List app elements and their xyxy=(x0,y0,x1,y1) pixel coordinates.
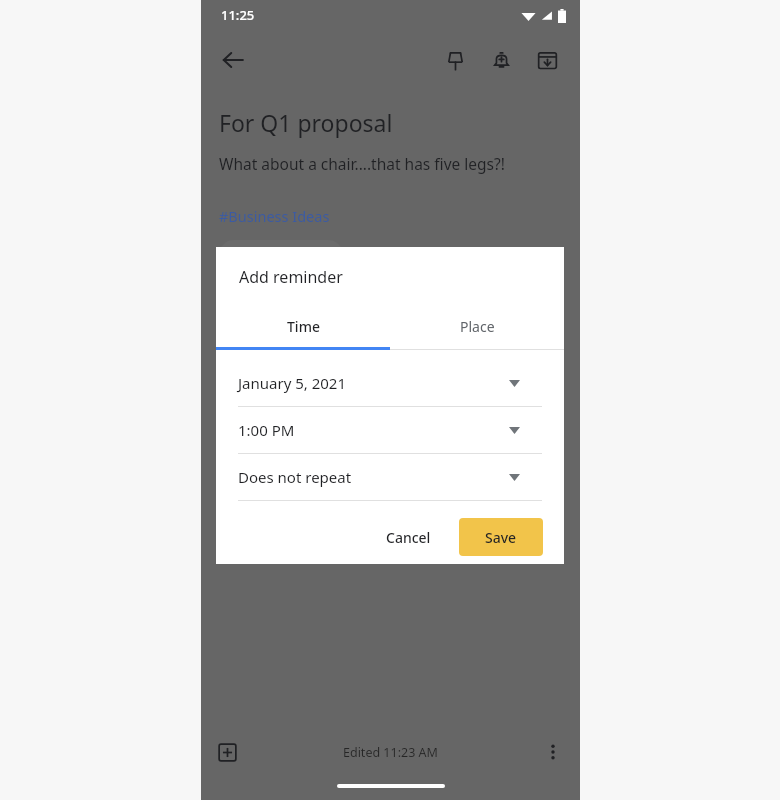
staticText: #Business Ideas xyxy=(219,206,330,226)
button[interactable]: Archive xyxy=(524,37,570,83)
button[interactable]: Add xyxy=(206,731,248,773)
staticText: Cancel xyxy=(386,528,431,547)
button[interactable]: 1:00 PM xyxy=(238,407,542,454)
staticText: What about a chair....that has five legs… xyxy=(219,153,505,174)
button[interactable]: Add reminder xyxy=(478,37,524,83)
button[interactable]: Time xyxy=(216,309,390,350)
button[interactable]: Cancel xyxy=(372,519,445,556)
staticText: Place xyxy=(460,317,495,336)
button[interactable]: More options xyxy=(532,731,574,773)
staticText: Add reminder xyxy=(239,266,343,288)
staticText: Save xyxy=(485,528,517,547)
button[interactable]: Back xyxy=(211,38,255,82)
button[interactable] xyxy=(219,240,343,270)
button[interactable]: January 5, 2021 xyxy=(238,360,542,407)
staticText: 1:00 PM xyxy=(238,420,295,440)
button[interactable]: Save xyxy=(459,518,543,556)
button[interactable]: Place xyxy=(390,309,564,350)
staticText: Edited 11:23 AM xyxy=(343,744,438,761)
button[interactable]: Does not repeat xyxy=(238,454,542,501)
staticText: For Q1 proposal xyxy=(219,107,393,138)
button[interactable]: Pin note xyxy=(432,37,478,83)
staticText: 11:25 xyxy=(221,6,255,24)
staticText: Time xyxy=(287,317,320,336)
staticText: January 5, 2021 xyxy=(238,373,347,393)
staticText: Does not repeat xyxy=(238,467,352,487)
